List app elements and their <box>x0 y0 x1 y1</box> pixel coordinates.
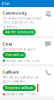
staticText: Estimated wait: 15 min <box>6 93 36 96</box>
staticText: Chat with us <box>5 53 23 57</box>
staticText: Community <box>3 10 27 16</box>
button[interactable]: Ask the community <box>3 29 36 35</box>
staticText: other customers in the <box>3 21 35 24</box>
staticText: Ask the community <box>5 30 33 34</box>
staticText: We'll call you back when an <box>3 76 39 79</box>
staticText: Callback <box>3 69 19 75</box>
staticText: Back <box>4 2 9 5</box>
button[interactable]: Chat with us <box>3 52 26 58</box>
staticText: community <box>3 25 17 28</box>
staticText: Get answers from experts and <box>3 17 42 20</box>
staticText: Average wait time: 2 min <box>6 59 40 62</box>
button[interactable]: Back <box>0 0 9 7</box>
staticText: agent is available <box>3 80 26 83</box>
button[interactable]: Request a callback <box>3 85 36 91</box>
staticText: Start a chat with an agent <box>3 48 36 51</box>
staticText: Chat <box>3 41 13 47</box>
staticText: Request a callback <box>5 86 33 90</box>
